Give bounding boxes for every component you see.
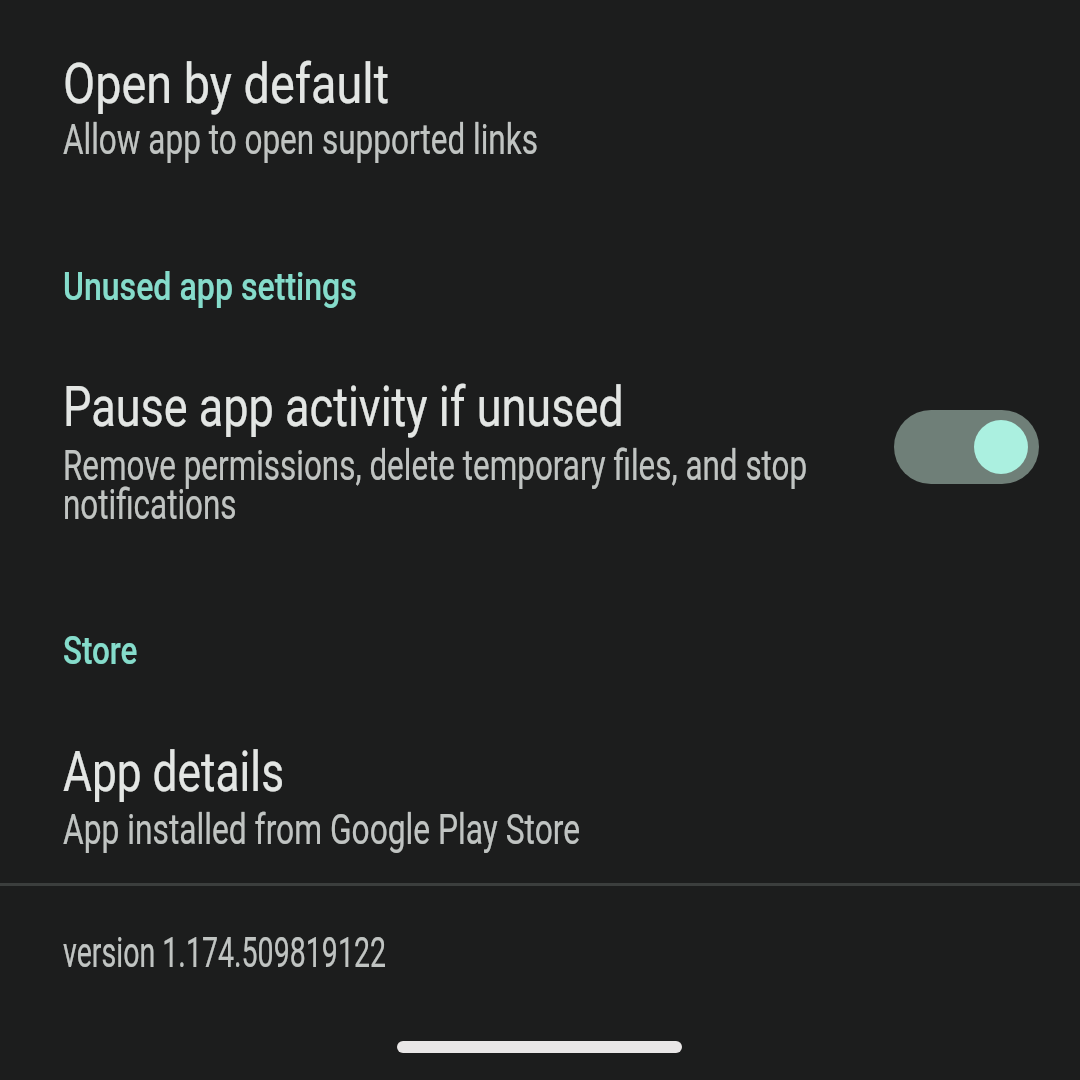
button[interactable] — [894, 410, 1039, 484]
staticText: Remove permissions, delete temporary fil… — [63, 441, 807, 490]
staticText: Allow app to open supported links — [63, 115, 538, 164]
staticText: Open by default — [63, 52, 390, 116]
staticText: notifications — [63, 480, 236, 529]
staticText: Unused app settings — [63, 265, 358, 310]
staticText: Pause app activity if unused — [63, 375, 624, 439]
staticText: App installed from Google Play Store — [63, 805, 580, 854]
staticText: App details — [63, 740, 284, 804]
staticText: Store — [63, 629, 138, 674]
button[interactable]: App details — [0, 725, 1080, 860]
staticText: version 1.174.509819122 — [63, 928, 387, 977]
button[interactable]: Open by default — [0, 30, 1080, 170]
button[interactable]: Pause app activity if unused — [0, 355, 1080, 535]
